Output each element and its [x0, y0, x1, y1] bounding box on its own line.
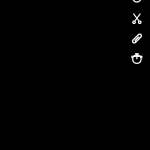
button[interactable]: Attach [126, 35, 148, 47]
button[interactable]: Tool [126, 0, 148, 5]
button[interactable]: Cut [126, 14, 148, 26]
button[interactable]: Timer [126, 57, 148, 69]
